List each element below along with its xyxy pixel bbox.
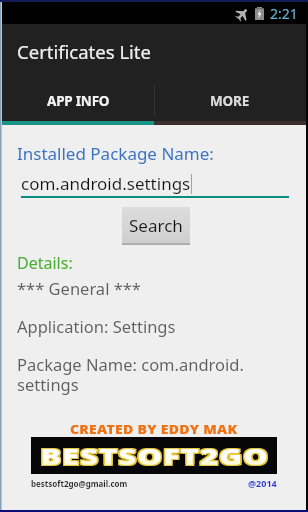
staticText: Certificates Lite [17, 39, 151, 64]
button[interactable]: CREATED BY EDDY MAK [2, 422, 306, 489]
staticText: Details: [17, 252, 73, 274]
staticText: APP INFO [47, 92, 110, 110]
staticText: @2014 [248, 477, 277, 489]
button[interactable]: Search [122, 207, 190, 245]
staticText: Search [129, 214, 183, 237]
staticText: Installed Package Name: [17, 142, 214, 165]
staticText: com.android.settings [21, 172, 191, 195]
staticText: 2:21 [270, 4, 298, 23]
staticText: bestsoft2go@gmail.com [31, 478, 128, 489]
button[interactable]: MORE [154, 78, 306, 125]
staticText: *** General *** [17, 277, 141, 299]
staticText: Package Name: com.android. settings [17, 353, 244, 396]
staticText: BESTSOFT2GO [39, 440, 267, 470]
staticText: BESTSOFT2GO [42, 442, 270, 472]
staticText: Application: Settings [17, 315, 176, 337]
staticText: BESTSOFT2GO [39, 442, 267, 472]
staticText: BESTSOFT2GO [40, 441, 269, 471]
button[interactable]: APP INFO [2, 78, 154, 125]
staticText: BESTSOFT2GO [42, 440, 270, 470]
staticText: MORE [210, 92, 250, 110]
staticText: CREATED BY EDDY MAK [70, 421, 238, 435]
